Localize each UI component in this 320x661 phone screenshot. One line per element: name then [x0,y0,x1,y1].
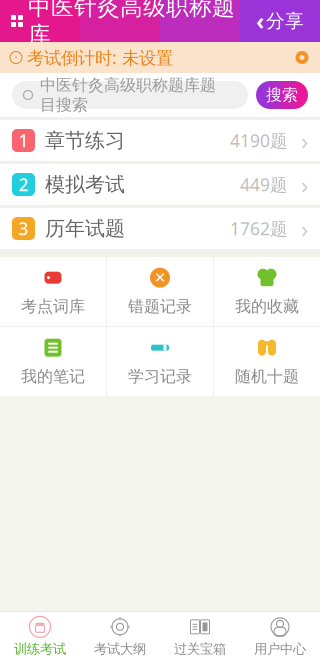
staticText: 4190题 [230,129,287,152]
staticText: 训练考试 [14,641,66,657]
button[interactable]: ✕ [107,257,213,326]
button[interactable]: 用户中心 [240,612,320,661]
button[interactable]: 学习记录 [107,327,213,396]
staticText: 用户中心 [254,641,306,657]
staticText: 考点词库 [21,297,85,316]
button[interactable]: 过关宝箱 [160,612,240,661]
staticText: › [301,213,308,244]
button[interactable]: 我的笔记 [0,327,106,396]
button[interactable]: ‹ [250,0,310,42]
staticText: › [301,169,308,200]
button[interactable]: 随机十题 [214,327,320,396]
staticText: 模拟考试 [45,172,125,197]
staticText: 过关宝箱 [174,641,226,657]
staticText: ‹ [256,6,264,36]
staticText: 随机十题 [235,367,299,386]
button[interactable]: 2 [0,164,320,205]
staticText: 历年试题 [45,216,125,241]
button[interactable]: 我的收藏 [214,257,320,326]
button[interactable]: 考点词库 [0,257,106,326]
staticText: 2 [18,173,28,196]
staticText: 搜索 [266,85,298,105]
button[interactable]: 1 [0,120,320,161]
staticText: 分享 [266,9,304,32]
staticText: 3 [18,217,28,240]
staticText: 1 [18,129,28,152]
staticText: 我的笔记 [21,367,85,386]
button[interactable]: 搜索 [256,81,308,109]
staticText: 1762题 [230,217,287,240]
button[interactable]: 考试大纲 [80,612,160,661]
staticText: 449题 [240,173,287,196]
staticText: 考试倒计时: 未设置 [27,46,173,69]
staticText: 我的收藏 [235,297,299,316]
staticText: 学习记录 [128,367,192,386]
staticText: 错题记录 [128,297,192,316]
staticText: 章节练习 [45,128,125,153]
staticText: › [301,125,308,156]
staticText: 考试大纲 [94,641,146,657]
button[interactable]: 训练考试 [0,612,80,661]
button[interactable]: · [0,42,320,73]
button[interactable]: 3 [0,208,320,249]
staticText: 中医针灸高级职称题库 [28,0,235,49]
staticText: ✕ [154,269,166,286]
staticText: 中医针灸高级职称题库题目搜索 [40,75,216,115]
staticText: · [14,49,17,65]
